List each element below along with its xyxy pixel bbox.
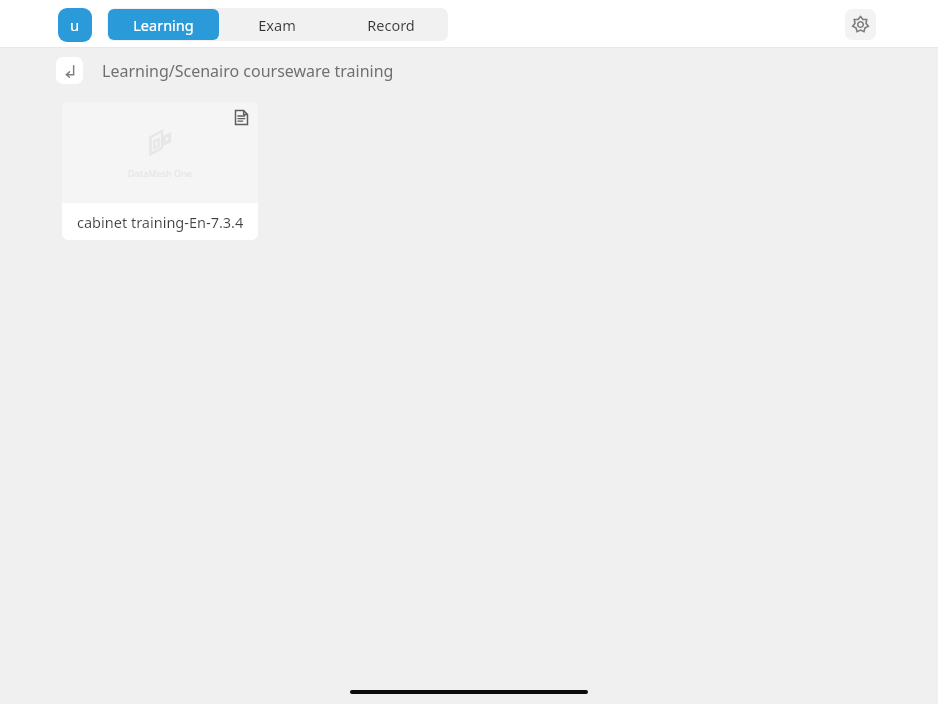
staticText: DataMesh One [128, 167, 192, 179]
button[interactable]: DataMesh One [62, 102, 258, 240]
button[interactable]: Document [230, 106, 252, 128]
staticText: Record [367, 15, 415, 35]
staticText: Learning/Scenairo courseware training [102, 60, 394, 82]
staticText: Exam [258, 15, 296, 35]
button[interactable]: Record [335, 9, 447, 40]
button[interactable]: Back [56, 57, 83, 84]
staticText: Learning [133, 15, 194, 35]
button[interactable]: Settings [845, 9, 876, 40]
button[interactable]: Exam [221, 9, 333, 40]
button[interactable]: Learning [108, 9, 219, 40]
button[interactable]: User profile [58, 8, 92, 42]
staticText: u [70, 15, 80, 35]
staticText: cabinet training-En-7.3.4 [77, 212, 244, 232]
